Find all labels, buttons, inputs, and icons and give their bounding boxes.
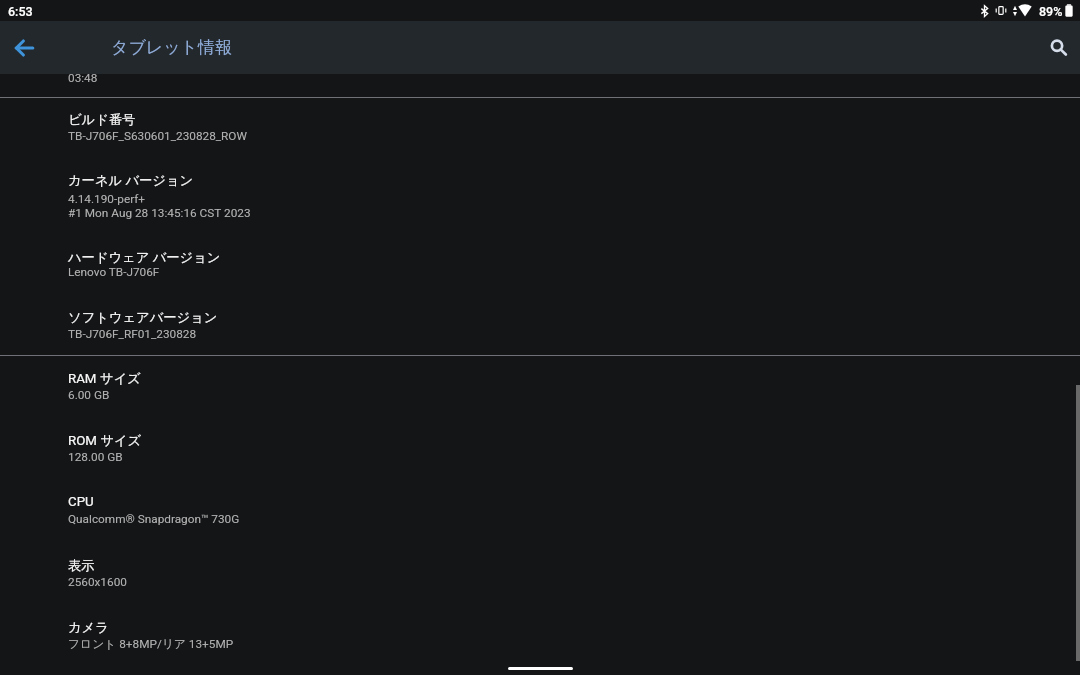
- button[interactable]: ROM サイズ: [0, 418, 1080, 480]
- staticText: TB-J706F_RF01_230828: [68, 327, 197, 341]
- button[interactable]: 03:48: [0, 74, 1080, 97]
- staticText: フロント 8+8MP/リア 13+5MP: [68, 637, 234, 652]
- staticText: 表示: [68, 557, 95, 574]
- button[interactable]: ハードウェア バージョン: [0, 236, 1080, 298]
- staticText: 03:48: [68, 71, 98, 85]
- staticText: 6:53: [8, 4, 33, 19]
- staticText: ハードウェア バージョン: [68, 249, 221, 266]
- staticText: 128.00 GB: [68, 450, 123, 464]
- button[interactable]: ソフトウェアバージョン: [0, 298, 1080, 355]
- button[interactable]: Search: [1045, 34, 1073, 62]
- staticText: 4.14.190-perf+: [68, 192, 146, 206]
- staticText: 2560x1600: [68, 575, 127, 589]
- staticText: CPU: [68, 494, 94, 510]
- staticText: RAM サイズ: [68, 370, 141, 387]
- staticText: カーネル バージョン: [68, 172, 194, 189]
- button[interactable]: 表示: [0, 542, 1080, 604]
- button[interactable]: ビルド番号: [0, 98, 1080, 160]
- button[interactable]: RAM サイズ: [0, 356, 1080, 418]
- button[interactable]: Back: [10, 34, 38, 62]
- button[interactable]: カーネル バージョン: [0, 160, 1080, 236]
- staticText: 6.00 GB: [68, 388, 110, 402]
- button[interactable]: カメラ: [0, 604, 1080, 666]
- staticText: TB-J706F_S630601_230828_ROW: [68, 129, 247, 143]
- button[interactable]: CPU: [0, 480, 1080, 542]
- staticText: Qualcomm® Snapdragon™ 730G: [68, 512, 240, 526]
- staticText: ソフトウェアバージョン: [68, 309, 218, 326]
- staticText: ビルド番号: [68, 111, 136, 128]
- staticText: 89%: [1039, 4, 1063, 19]
- staticText: ROM サイズ: [68, 432, 142, 449]
- staticText: #1 Mon Aug 28 13:45:16 CST 2023: [68, 206, 251, 220]
- staticText: カメラ: [68, 619, 109, 636]
- staticText: Lenovo TB-J706F: [68, 265, 160, 279]
- staticText: タブレット情報: [111, 37, 232, 58]
